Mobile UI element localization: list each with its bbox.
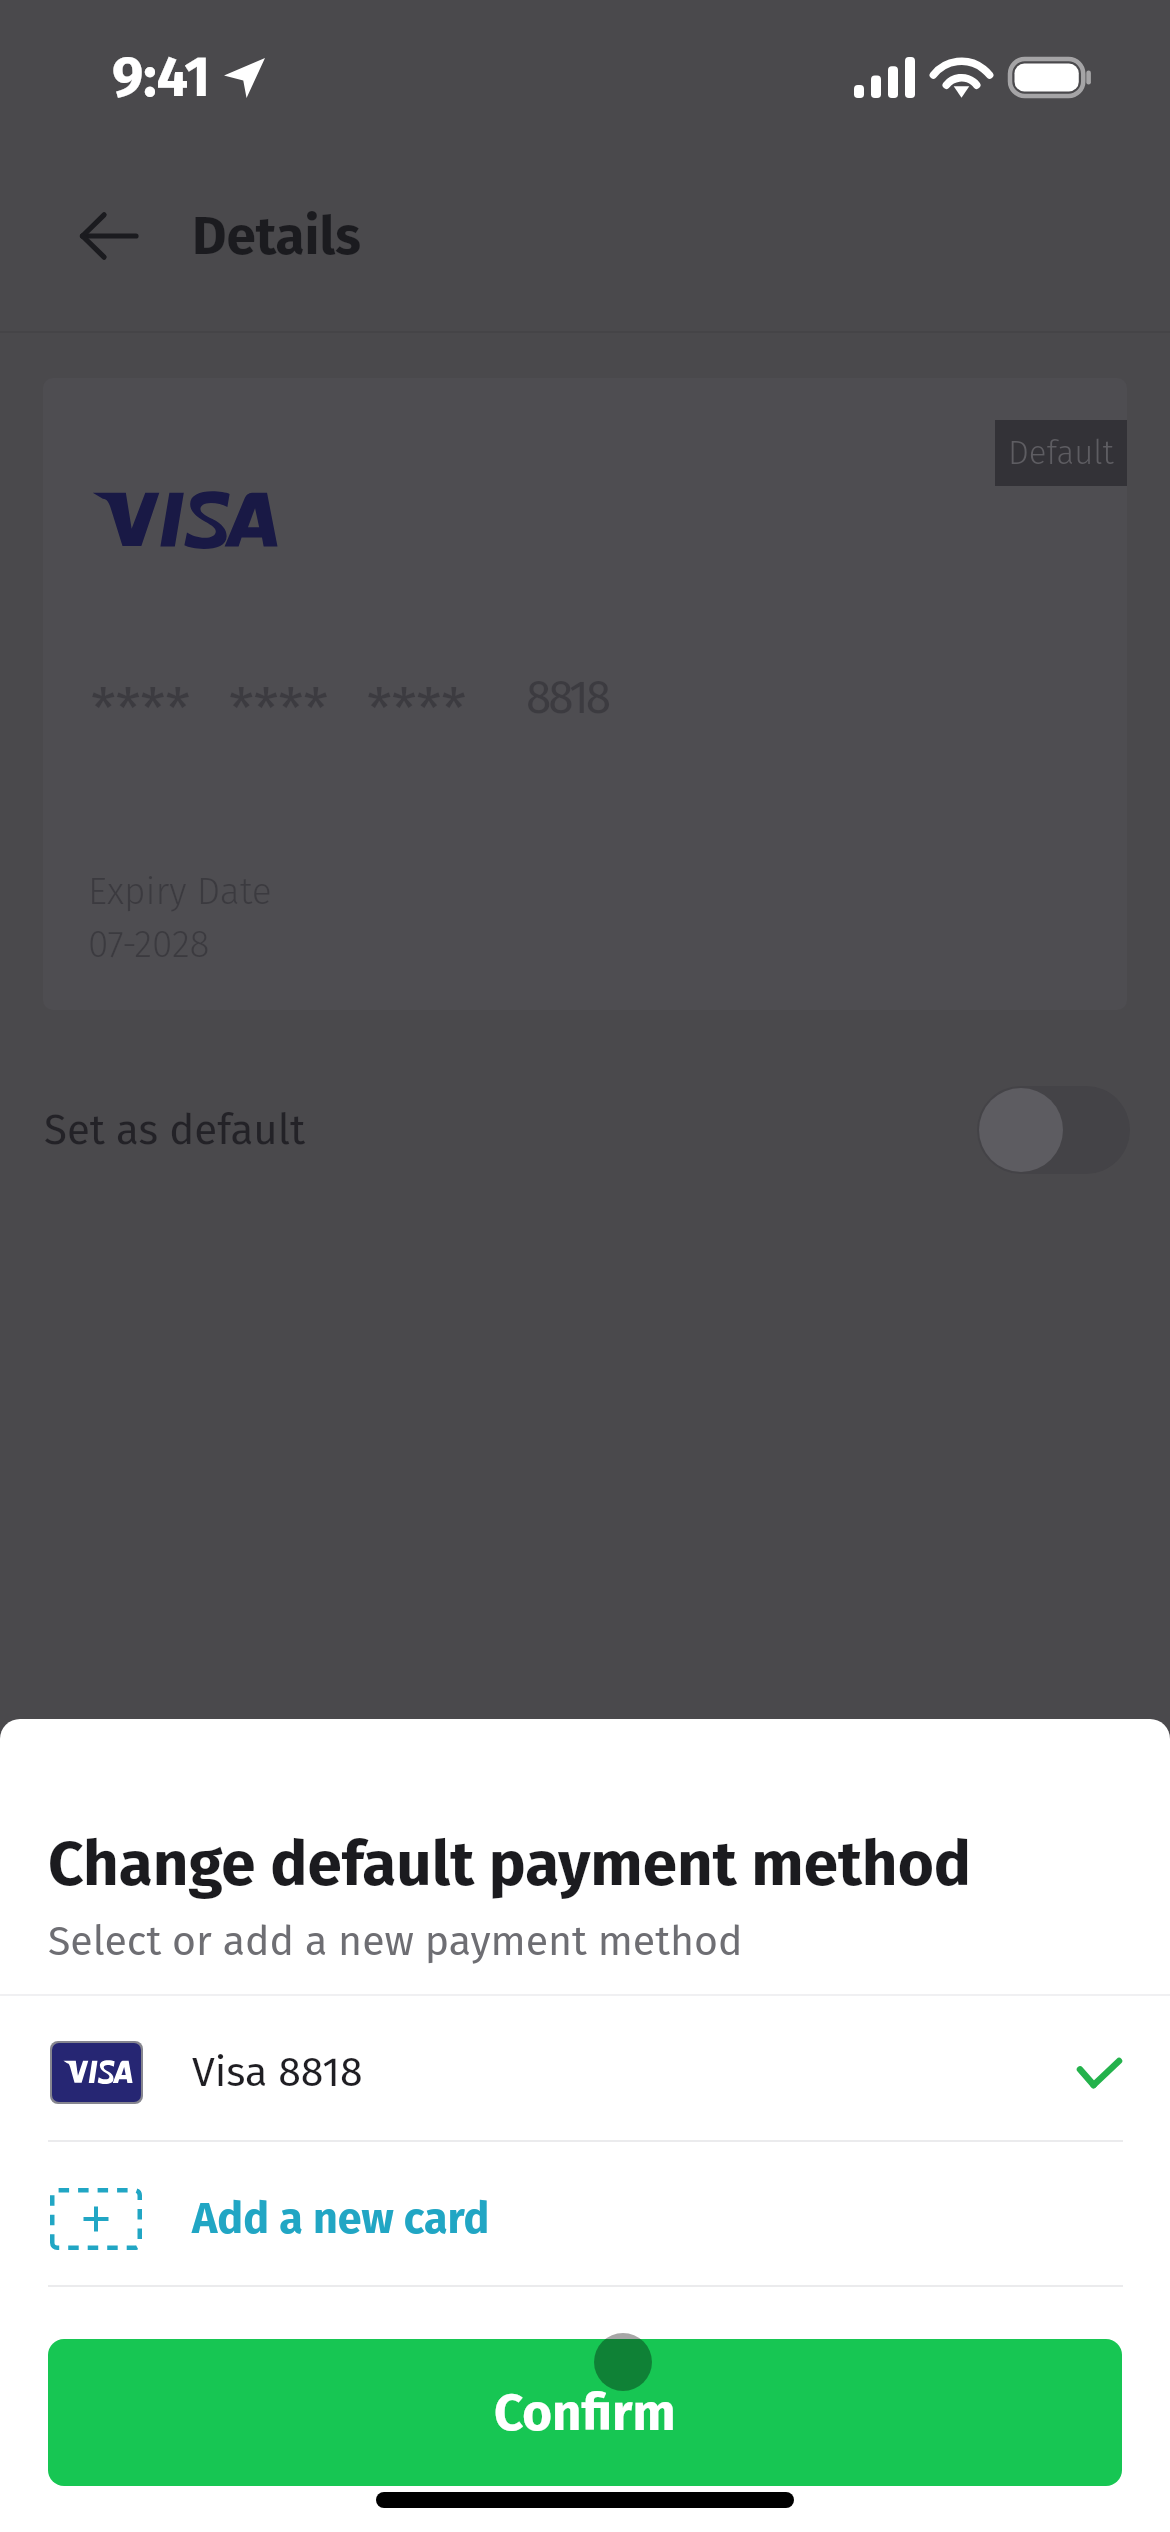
staticText: Details <box>192 204 361 268</box>
staticText: **** <box>229 676 329 743</box>
staticText: Set as default <box>44 1105 306 1155</box>
staticText: Select or add a new payment method <box>48 1917 743 1966</box>
staticText: Expiry Date <box>88 869 272 913</box>
button[interactable]: Set as default <box>0 1075 1170 1185</box>
button[interactable]: Visa 8818 <box>0 2000 1170 2145</box>
staticText: **** <box>367 676 467 743</box>
staticText: 9:41 <box>112 44 211 111</box>
staticText: **** <box>91 676 191 743</box>
staticText: 8818 <box>526 670 608 725</box>
button[interactable]: Confirm <box>48 2339 1122 2486</box>
staticText: Confirm <box>494 2382 676 2443</box>
staticText: 07-2028 <box>88 922 210 966</box>
staticText: Default <box>1008 433 1114 473</box>
staticText: Add a new card <box>192 2193 490 2245</box>
button[interactable]: Add a new card <box>0 2147 1170 2290</box>
button[interactable]: Back <box>53 190 163 282</box>
staticText: Change default payment method <box>48 1827 972 1901</box>
staticText: Visa 8818 <box>192 2048 363 2097</box>
